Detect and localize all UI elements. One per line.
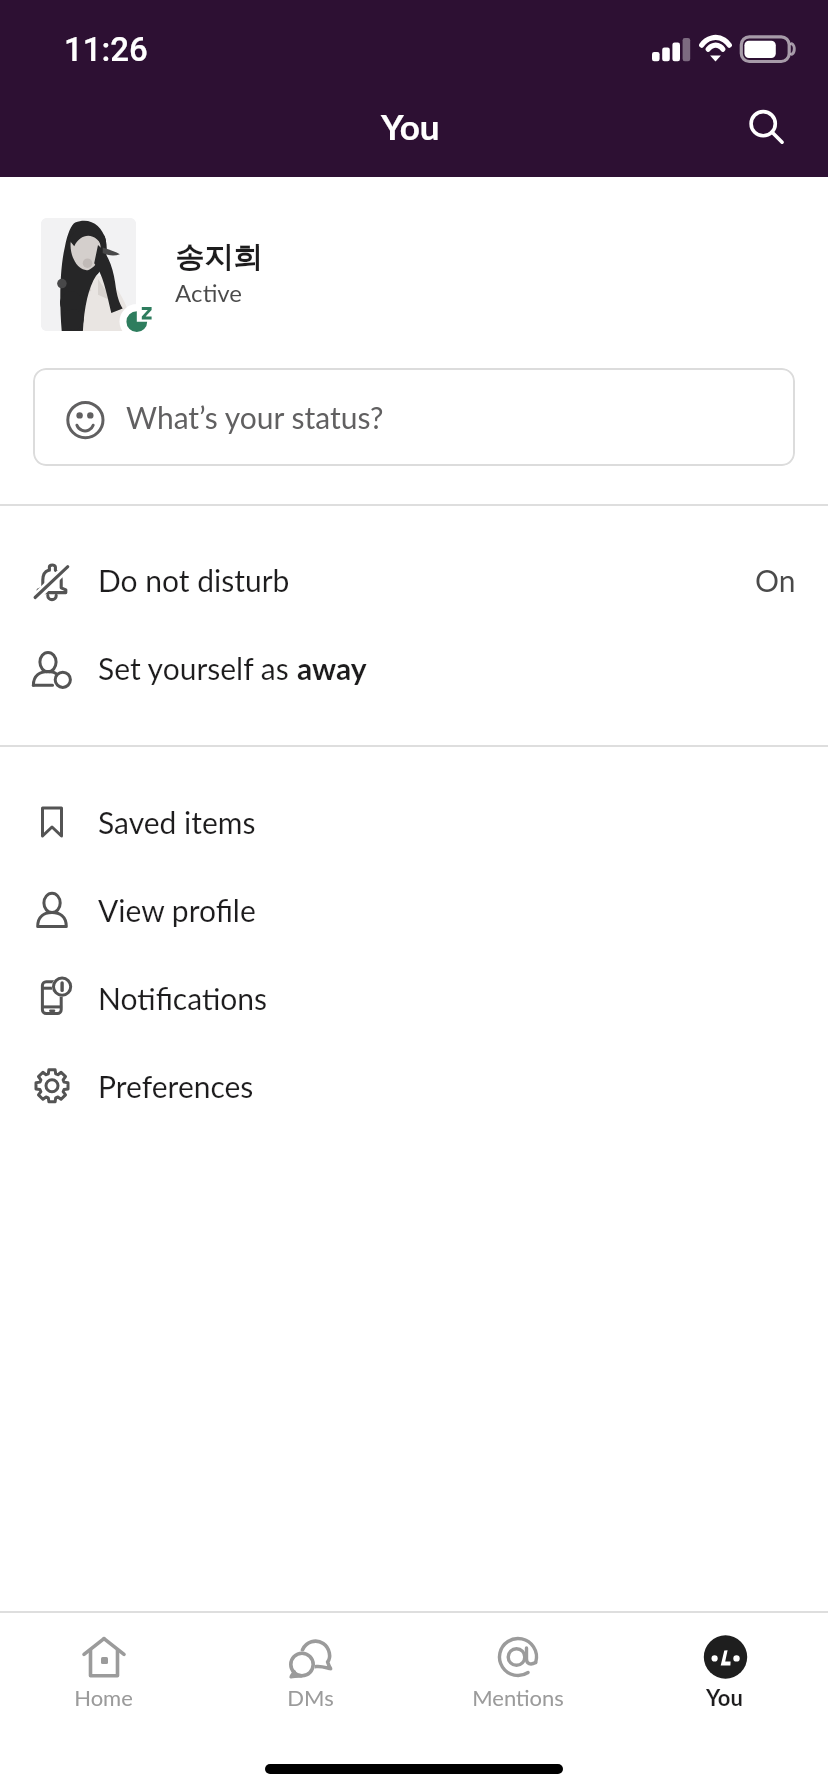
button[interactable]: Mentions [414,1612,621,1732]
staticText: What’s your status? [126,399,384,435]
button[interactable]: Saved items [0,778,828,866]
staticText: Do not disturb [98,562,290,598]
staticText: Set yourself as [98,650,297,686]
staticText: 11:26 [64,30,148,69]
staticText: Active [175,278,242,307]
staticText: On [755,562,796,598]
button[interactable]: Preferences [0,1042,828,1130]
staticText: Saved items [98,804,256,840]
staticText: away [297,650,367,686]
button[interactable]: DMs [207,1612,414,1732]
button[interactable]: Set yourself as [0,624,828,712]
staticText: DMs [287,1684,334,1710]
staticText: 송지희 [175,239,262,276]
button[interactable]: What’s your status? [33,368,795,466]
staticText: Home [74,1684,133,1710]
button[interactable]: Search [723,84,807,168]
button[interactable]: Do not disturb [0,536,828,624]
staticText: You [706,1684,743,1710]
staticText: Notifications [98,980,268,1016]
button[interactable]: Notifications [0,954,828,1042]
staticText: Mentions [472,1684,564,1710]
staticText: View profile [98,892,256,928]
button[interactable]: Home [0,1612,207,1732]
staticText: Preferences [98,1068,254,1104]
button[interactable]: You [621,1612,828,1732]
staticText: You [381,105,440,147]
button[interactable]: View profile [0,866,828,954]
